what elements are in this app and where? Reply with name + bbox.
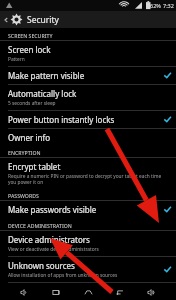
staticText: Owner info [8, 132, 50, 143]
staticText: DEVICE ADMINISTRATION [8, 222, 72, 229]
button[interactable]: Back [112, 285, 127, 300]
staticText: Automatically lock [8, 88, 77, 99]
button[interactable]: Home [81, 285, 96, 300]
staticText: SCREEN SECURITY [8, 32, 53, 39]
staticText: Make pattern visible [8, 70, 85, 81]
staticText: 5 seconds after sleep [8, 100, 56, 107]
staticText: PASSWORDS [8, 192, 39, 199]
button[interactable]: Device administrators [0, 231, 176, 256]
button[interactable]: Unknown sources [0, 257, 176, 282]
button[interactable]: Encrypt tablet [0, 158, 176, 188]
staticText: Unknown sources [8, 260, 75, 271]
staticText: Screen lock [8, 44, 51, 55]
button[interactable]: Owner info [0, 129, 176, 145]
staticText: 62% [150, 2, 161, 9]
staticText: Make passwords visible [8, 204, 97, 215]
staticText: 7:32 [163, 2, 174, 9]
button[interactable]: Up, Security [0, 11, 176, 28]
button[interactable]: Make passwords visible [0, 201, 176, 218]
staticText: Device administrators [8, 234, 90, 245]
button[interactable]: Screen lock [0, 41, 176, 66]
button[interactable]: Volume up [144, 285, 159, 300]
button[interactable]: Verify apps [0, 283, 176, 285]
staticText: ENCRYPTION [8, 149, 41, 156]
staticText: View or deactivate device administrators [8, 246, 99, 253]
staticText: Security [27, 14, 59, 26]
staticText: Encrypt tablet [8, 161, 61, 172]
button[interactable]: Automatically lock [0, 85, 176, 110]
button[interactable]: Recent apps [49, 285, 64, 300]
staticText: Pattern [8, 56, 25, 63]
staticText: Power button instantly locks [8, 114, 115, 125]
button[interactable]: Power button instantly locks [0, 111, 176, 128]
staticText: Allow installation of apps from unknown … [8, 272, 118, 279]
staticText: Require a numeric PIN or password to dec… [8, 173, 168, 185]
button[interactable]: Volume down [17, 285, 32, 300]
button[interactable]: Make pattern visible [0, 67, 176, 84]
